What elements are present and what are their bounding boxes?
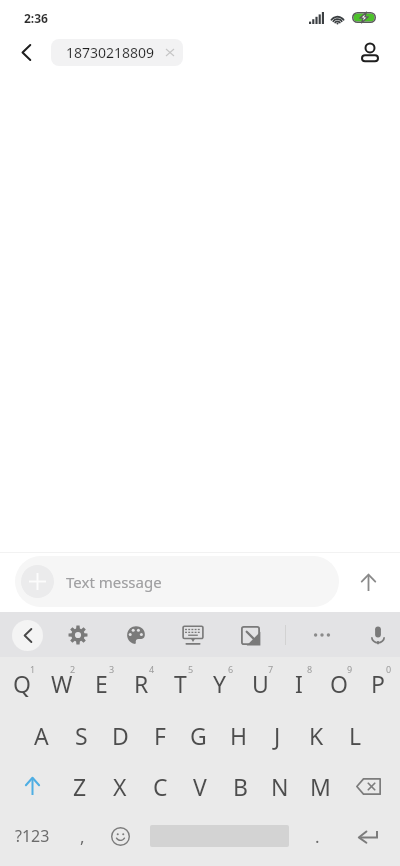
button[interactable]: G [179,711,218,759]
button[interactable]: . [295,814,339,858]
staticText: V [193,771,207,802]
button[interactable]: M [300,762,340,810]
button[interactable]: K [297,711,336,759]
button[interactable]: Send [347,561,389,603]
button[interactable]: I [279,659,319,707]
staticText: K [309,720,324,751]
staticText: O [330,668,348,699]
button[interactable]: Text message [15,556,339,607]
staticText: T [174,668,187,699]
button[interactable]: X [100,762,140,810]
staticText: X [113,771,127,802]
staticText: U [252,668,269,699]
staticText: M [310,771,331,802]
staticText: B [233,771,248,802]
staticText: 5 [188,663,194,673]
button[interactable]: P [358,659,398,707]
staticText: J [274,720,281,751]
button[interactable]: Theme [114,613,158,657]
staticText: ?123 [15,825,50,847]
staticText: 2:36 [24,10,48,26]
staticText: I [295,668,303,699]
staticText: 3 [109,663,115,673]
button[interactable]: Contact details [352,34,388,70]
staticText: N [271,771,289,802]
button[interactable]: Shift [2,762,62,810]
button[interactable]: More options [300,613,344,657]
staticText: 8 [307,663,313,673]
staticText: R [134,668,149,699]
button[interactable]: E [81,659,121,707]
staticText: 0 [386,663,392,673]
staticText: 4 [149,663,155,673]
button[interactable]: H [219,711,258,759]
staticText: A [34,720,49,751]
staticText: S [75,720,88,751]
button[interactable]: Keyboard layout [171,613,215,657]
button[interactable]: U [240,659,280,707]
staticText: 7 [268,663,274,673]
staticText: 9 [347,663,353,673]
button[interactable]: Backspace [338,762,398,810]
staticText: L [349,720,362,751]
staticText: Z [73,771,87,802]
button[interactable]: Hide toolbar [5,613,49,657]
staticText: E [95,668,108,699]
button[interactable]: A [22,711,61,759]
button[interactable]: Enter [342,814,394,858]
staticText: Text message [66,572,162,592]
button[interactable]: Resize keyboard [228,613,272,657]
button[interactable]: F [140,711,179,759]
button[interactable]: J [258,711,297,759]
staticText: 1 [30,663,36,673]
button[interactable]: , [60,814,104,858]
staticText: C [153,771,168,802]
staticText: G [190,720,207,751]
button[interactable]: N [260,762,300,810]
button[interactable]: T [160,659,200,707]
button[interactable]: C [140,762,180,810]
staticText: 18730218809 [66,43,155,62]
button[interactable]: V [180,762,220,810]
button[interactable]: 18730218809 [51,39,183,66]
button[interactable]: Voice input [356,613,400,657]
staticText: 2 [70,663,76,673]
staticText: 6 [228,663,234,673]
button[interactable]: B [220,762,260,810]
button[interactable]: Emoji [98,814,142,858]
button[interactable]: Settings [56,613,100,657]
staticText: F [154,720,166,751]
staticText: Q [13,668,31,699]
button[interactable]: D [101,711,140,759]
button[interactable]: W [42,659,82,707]
staticText: , [80,825,85,848]
button[interactable]: Q [2,659,42,707]
button[interactable]: S [62,711,101,759]
button[interactable]: Z [60,762,100,810]
button[interactable]: ?123 [0,814,64,858]
button[interactable]: L [336,711,375,759]
button[interactable]: R [121,659,161,707]
staticText: W [51,668,73,699]
button[interactable]: Y [200,659,240,707]
button[interactable]: Back [8,34,44,70]
staticText: . [315,825,320,848]
staticText: Y [213,668,227,699]
staticText: P [371,668,385,699]
button[interactable]: O [319,659,359,707]
staticText: H [230,720,248,751]
staticText: D [112,720,129,751]
